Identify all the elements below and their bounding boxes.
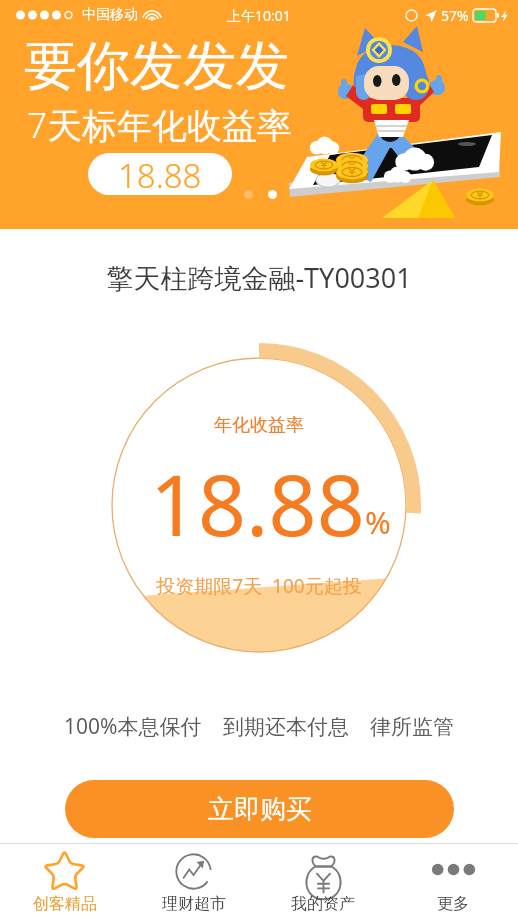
staticText: 律所监管 <box>370 714 454 740</box>
staticText: 100%本息保付 <box>64 712 202 741</box>
staticText: 年化收益率 <box>0 414 518 437</box>
staticText: 要你发发发 <box>24 33 289 100</box>
staticText: 中国移动 <box>82 6 138 24</box>
staticText: 7天标年化收益率 <box>27 101 292 149</box>
button[interactable]: 我的资产 <box>258 844 388 920</box>
staticText: % <box>365 501 391 543</box>
staticText: 我的资产 <box>291 894 355 914</box>
staticText: 更多 <box>437 894 469 914</box>
staticText: 18.88 <box>118 153 202 195</box>
staticText: 18.88 <box>150 446 365 560</box>
staticText: 到期还本付息 <box>223 714 349 740</box>
button[interactable]: 立即购买 <box>65 780 454 838</box>
staticText: 57% <box>441 6 469 25</box>
staticText: 投资期限7天 100元起投 <box>0 573 518 599</box>
button[interactable]: 更多 <box>388 844 518 920</box>
button[interactable]: 创客精品 <box>0 844 129 920</box>
button[interactable]: 中国移动 <box>0 0 518 229</box>
button[interactable]: 理财超市 <box>129 844 258 920</box>
staticText: 擎天柱跨境金融-TY00301 <box>0 259 518 296</box>
staticText: 创客精品 <box>33 894 97 914</box>
staticText: 理财超市 <box>162 894 226 914</box>
staticText: 立即购买 <box>208 793 312 826</box>
staticText: 上午10:01 <box>227 6 291 25</box>
